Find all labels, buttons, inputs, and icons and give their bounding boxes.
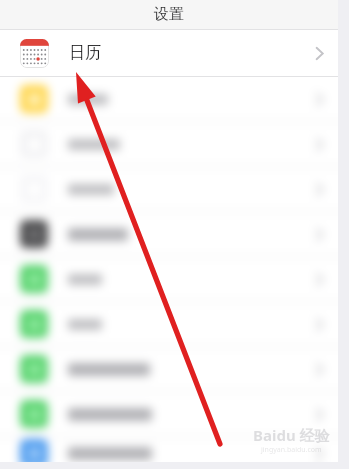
button[interactable]: Settings item: [0, 392, 338, 436]
button[interactable]: Settings item: [0, 302, 338, 346]
button[interactable]: 日历: [0, 30, 338, 76]
button[interactable]: Settings item: [0, 437, 338, 469]
staticText: 日历: [69, 43, 101, 63]
button[interactable]: Settings item: [0, 347, 338, 391]
button[interactable]: Settings item: [0, 77, 338, 121]
button[interactable]: Settings item: [0, 212, 338, 256]
button[interactable]: Settings item: [0, 257, 338, 301]
staticText: jingyan.baidu.com: [261, 445, 322, 455]
staticText: 设置: [154, 5, 184, 24]
button[interactable]: Settings item: [0, 167, 338, 211]
staticText: Baidu 经验: [253, 425, 330, 445]
button[interactable]: Settings item: [0, 122, 338, 166]
